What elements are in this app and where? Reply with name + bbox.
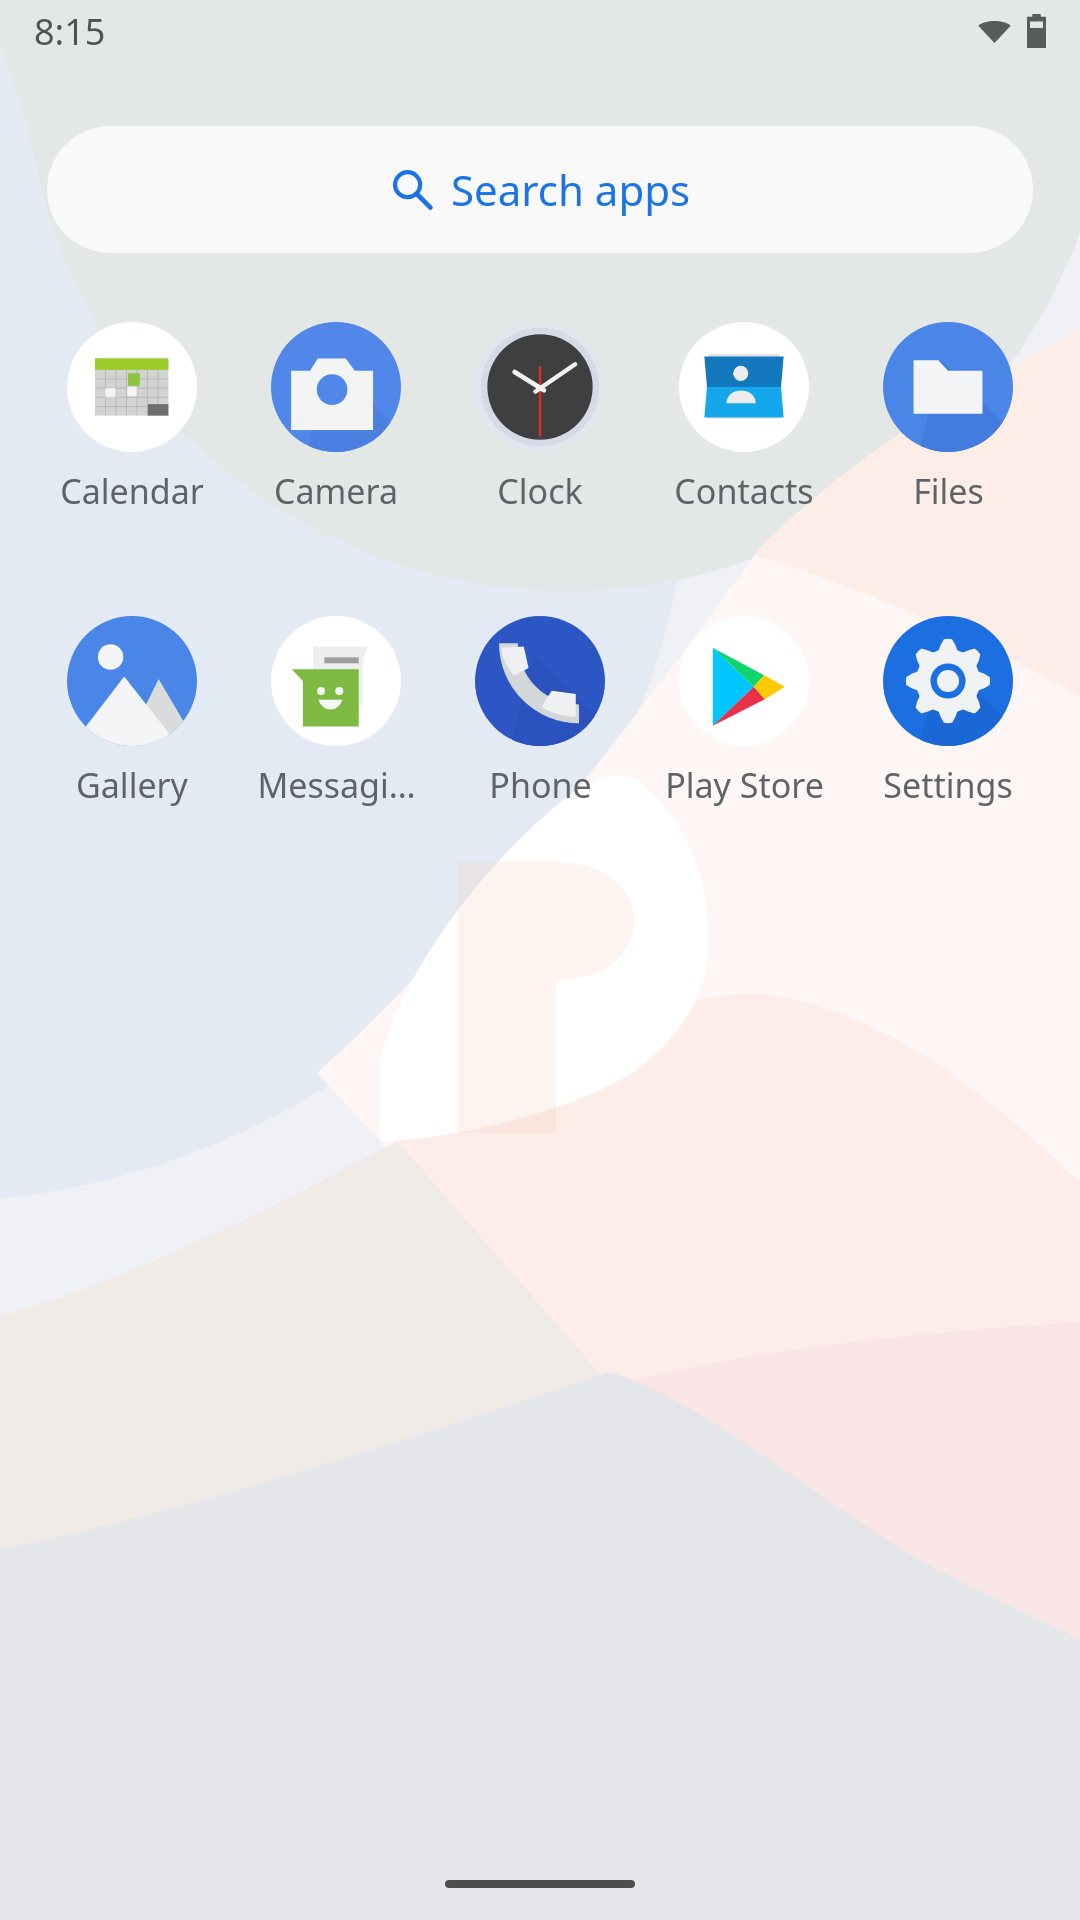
staticText: Phone bbox=[489, 762, 592, 808]
button[interactable]: Camera bbox=[234, 322, 438, 514]
button[interactable]: Gallery bbox=[30, 616, 234, 808]
staticText: Contacts bbox=[674, 468, 814, 514]
staticText: Play Store bbox=[665, 762, 824, 808]
staticText: Camera bbox=[274, 468, 398, 514]
button[interactable]: Phone bbox=[438, 616, 642, 808]
button[interactable]: Contacts bbox=[642, 322, 846, 514]
staticText: 8:15 bbox=[34, 7, 106, 56]
staticText: Settings bbox=[883, 762, 1013, 808]
button[interactable]: Files bbox=[846, 322, 1050, 514]
staticText: Files bbox=[913, 468, 984, 514]
button[interactable]: Messagi… bbox=[234, 616, 438, 808]
staticText: Gallery bbox=[76, 762, 188, 808]
button[interactable]: Calendar bbox=[30, 322, 234, 514]
button[interactable]: Clock bbox=[438, 322, 642, 514]
button[interactable]: Settings bbox=[846, 616, 1050, 808]
button[interactable]: Play Store bbox=[642, 616, 846, 808]
staticText: Search apps bbox=[451, 161, 691, 218]
staticText: Messagi… bbox=[257, 762, 416, 808]
staticText: Calendar bbox=[60, 468, 204, 514]
staticText: Clock bbox=[497, 468, 583, 514]
button[interactable]: Search apps bbox=[47, 126, 1033, 253]
